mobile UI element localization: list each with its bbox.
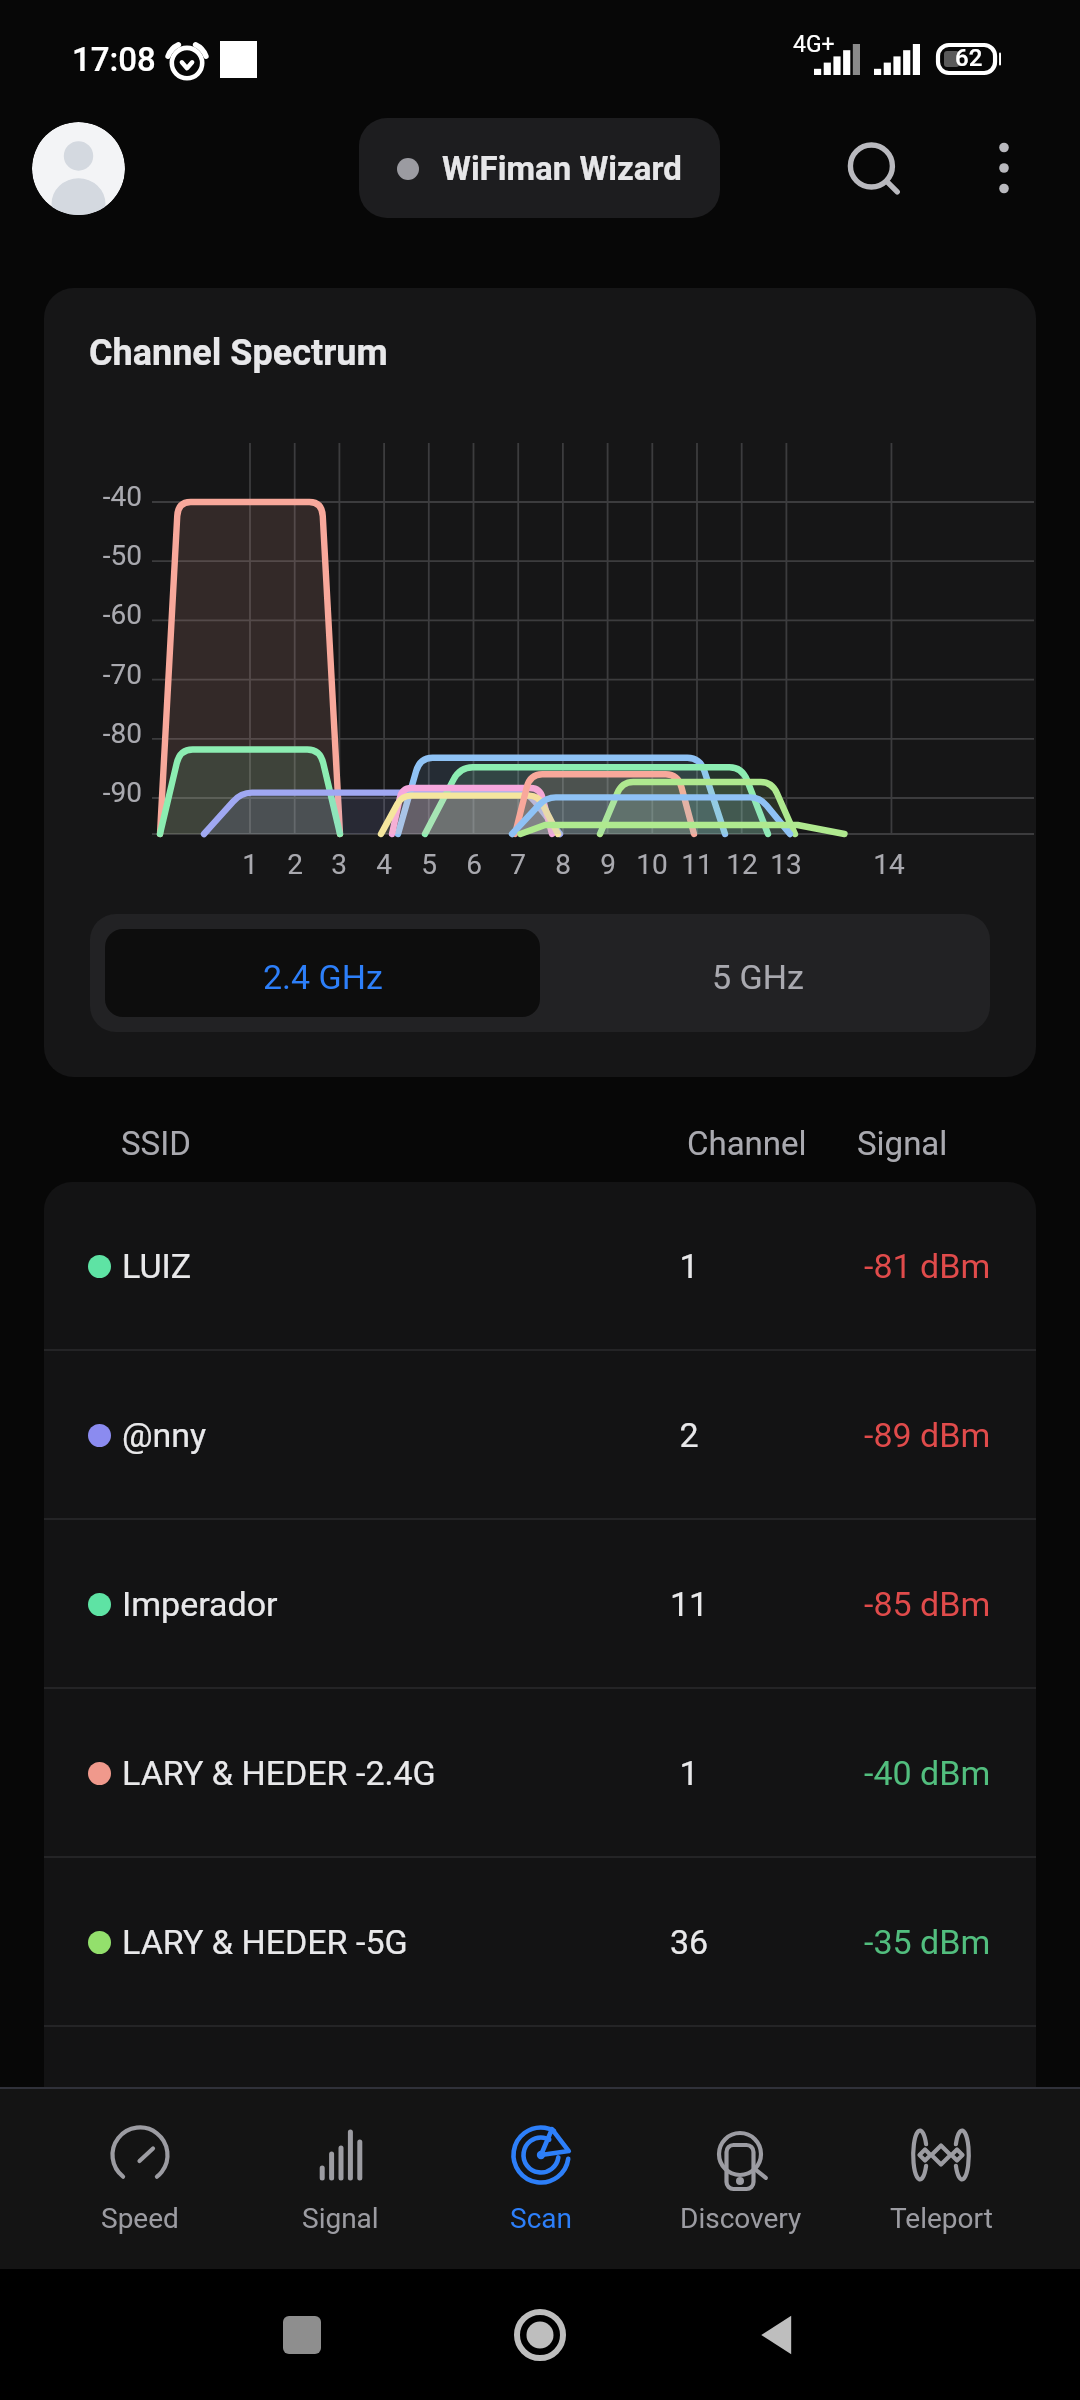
button[interactable]: Home [514,2309,566,2361]
staticText: Channel [687,1124,807,1163]
staticText: 2.4 GHz [263,957,383,997]
staticText: Channel Spectrum [89,332,388,374]
staticText: 9 [578,848,638,881]
staticText: 11 [639,1584,739,1624]
staticText: -89 dBm [864,1415,991,1455]
staticText: Speed [101,2202,179,2235]
staticText: 14 [859,848,919,881]
button[interactable]: LUIZ [44,1182,1036,1349]
staticText: 7 [488,848,548,881]
button[interactable]: Imperador [44,1520,1036,1687]
staticText: 62 [955,44,983,72]
staticText: 10 [622,848,682,881]
button[interactable]: More options [966,130,1042,206]
button[interactable]: 5 GHz [540,929,975,1017]
staticText: 1 [639,1246,739,1286]
staticText: LUIZ [122,1246,192,1286]
button[interactable]: @nny [44,1351,1036,1518]
staticText: -70 [62,658,142,691]
button[interactable]: Teleport [841,2089,1041,2269]
staticText: 13 [756,848,816,881]
staticText: Discovery [680,2202,802,2235]
staticText: -40 dBm [864,1753,991,1793]
staticText: 2 [265,848,325,881]
staticText: 6 [444,848,504,881]
staticText: 8 [533,848,593,881]
staticText: -81 dBm [864,1246,991,1286]
staticText: -35 dBm [864,1922,991,1962]
staticText: 3 [309,848,369,881]
staticText: -40 [62,480,142,513]
staticText: 17:08 [72,40,156,79]
staticText: -50 [62,539,142,572]
staticText: Signal [302,2202,379,2235]
button[interactable]: Recents [283,2316,321,2354]
staticText: 5 GHz [712,957,804,997]
button[interactable]: Search [836,126,920,210]
staticText: Signal [857,1124,948,1163]
staticText: 2 [639,1415,739,1455]
staticText: -60 [62,598,142,631]
button[interactable]: Scan [441,2089,641,2269]
button[interactable]: Discovery [641,2089,841,2269]
button[interactable]: Account [32,122,125,215]
staticText: -85 dBm [864,1584,991,1624]
button[interactable]: WiFiman Wizard [359,118,720,218]
staticText: -90 [62,776,142,809]
staticText: SSID [121,1124,191,1163]
staticText: 4 [354,848,414,881]
staticText: 11 [667,848,727,881]
staticText: 12 [712,848,772,881]
button[interactable]: Speed [39,2089,240,2269]
staticText: 1 [639,1753,739,1793]
staticText: -80 [62,717,142,750]
staticText: Imperador [122,1584,278,1624]
staticText: Teleport [890,2202,993,2235]
button[interactable]: LARY & HEDER -5G [44,1858,1036,2025]
staticText: LARY & HEDER -5G [122,1922,408,1962]
staticText: 1 [220,848,280,881]
staticText: WiFiman Wizard [442,149,682,188]
staticText: Scan [510,2202,572,2235]
button[interactable]: LARY & HEDER -2.4G [44,1689,1036,1856]
staticText: 4G+ [793,31,835,58]
button[interactable]: Signal [240,2089,441,2269]
button[interactable]: 2.4 GHz [105,929,540,1017]
staticText: @nny [122,1415,207,1455]
button[interactable]: Back [756,2313,800,2357]
staticText: 5 [399,848,459,881]
staticText: LARY & HEDER -2.4G [122,1753,436,1793]
staticText: 36 [639,1922,739,1962]
